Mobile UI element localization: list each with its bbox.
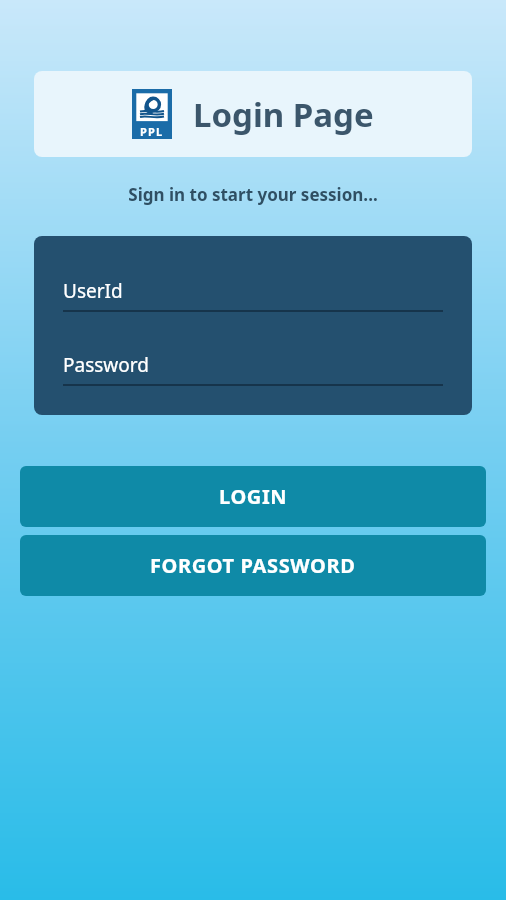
other: PPL logo <box>132 89 172 139</box>
staticText: Sign in to start your session... <box>0 183 506 206</box>
staticText: PPL <box>140 124 164 139</box>
staticText: Login Page <box>193 92 374 137</box>
button[interactable]: FORGOT PASSWORD <box>20 535 486 596</box>
staticText: Password <box>63 352 149 378</box>
button[interactable]: LOGIN <box>20 466 486 527</box>
staticText: FORGOT PASSWORD <box>150 552 356 579</box>
staticText: UserId <box>63 278 123 304</box>
staticText: LOGIN <box>219 483 288 510</box>
button[interactable]: UserId <box>63 278 443 312</box>
button[interactable]: Password <box>63 352 443 386</box>
button[interactable]: PPL logo <box>34 71 472 157</box>
